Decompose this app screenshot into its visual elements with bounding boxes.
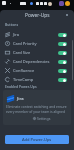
button[interactable]: Toggle bbox=[58, 69, 67, 73]
button[interactable]: Settings bbox=[33, 116, 51, 121]
button[interactable]: Toggle bbox=[58, 42, 67, 46]
button[interactable]: Confluence bbox=[0, 66, 74, 75]
button[interactable]: Jira bbox=[3, 90, 71, 125]
button[interactable]: Jira bbox=[0, 30, 74, 39]
button[interactable]: Add Power-Ups bbox=[5, 135, 69, 144]
staticText: Enabled Power-Ups bbox=[5, 84, 37, 88]
staticText: Add Power-Ups bbox=[22, 137, 52, 142]
button[interactable]: Close bbox=[64, 12, 70, 18]
staticText: Card Size bbox=[13, 50, 31, 55]
button[interactable]: Toggle bbox=[58, 33, 67, 37]
button[interactable]: Card Priority bbox=[0, 39, 74, 48]
button[interactable]: Toggle bbox=[58, 51, 67, 55]
button[interactable]: Toggle bbox=[58, 78, 67, 82]
staticText: Card Dependencies bbox=[13, 59, 50, 64]
staticText: Jira bbox=[13, 32, 19, 37]
staticText: Power-Ups bbox=[25, 12, 50, 19]
staticText: TimeCamp bbox=[13, 77, 34, 82]
staticText: Buttons bbox=[5, 22, 19, 26]
staticText: Settings bbox=[37, 116, 51, 121]
button[interactable]: Card Size bbox=[0, 48, 74, 57]
staticText: Jira bbox=[17, 96, 24, 101]
button[interactable]: Toggle bbox=[58, 60, 67, 64]
staticText: Card Priority bbox=[13, 41, 37, 46]
button[interactable]: TimeCamp bbox=[0, 75, 74, 84]
button[interactable]: Card Dependencies bbox=[0, 57, 74, 66]
staticText: Confluence bbox=[13, 68, 35, 73]
staticText: Eliminate context switching and ensure e… bbox=[6, 104, 68, 114]
